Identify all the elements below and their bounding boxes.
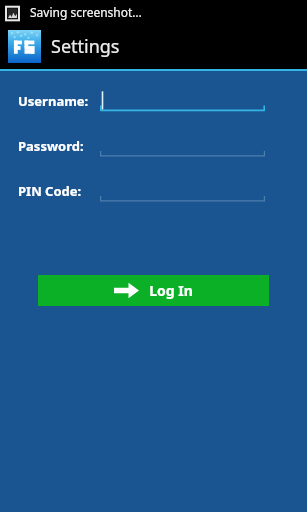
staticText: Log In xyxy=(149,281,193,300)
button[interactable] xyxy=(100,135,265,157)
button[interactable] xyxy=(100,90,265,112)
staticText: Settings xyxy=(51,34,120,59)
button[interactable]: Log In xyxy=(38,275,269,306)
staticText: Saving screenshot… xyxy=(30,4,142,20)
staticText: Username: xyxy=(18,92,89,110)
button[interactable] xyxy=(100,180,265,202)
staticText: Password: xyxy=(18,137,84,155)
staticText: PIN Code: xyxy=(18,182,82,200)
